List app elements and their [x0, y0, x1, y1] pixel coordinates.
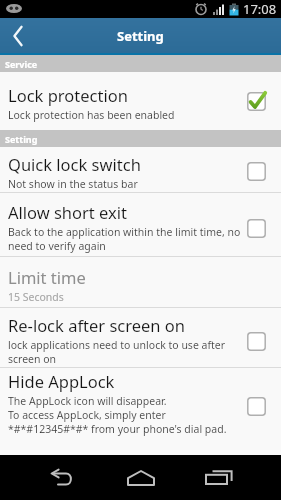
staticText: Limit time [8, 266, 86, 288]
button[interactable]: Hide AppLock [0, 368, 281, 444]
staticText: Allow short exit [8, 201, 128, 223]
button[interactable]: Allow short exit [0, 193, 281, 256]
button[interactable] [190, 455, 248, 500]
staticText: 17:08 [243, 0, 277, 18]
staticText: Back to the application within the limit… [8, 225, 241, 239]
staticText: Hide AppLock [8, 370, 115, 392]
staticText: lock applications need to unlock to use … [8, 338, 226, 352]
staticText: Re-lock after screen on [8, 314, 186, 336]
staticText: need to verify again [8, 239, 106, 253]
staticText: The AppLock icon will disappear. [8, 394, 167, 408]
button[interactable] [112, 455, 170, 500]
button[interactable] [0, 18, 40, 53]
staticText: To access AppLock, simply enter [8, 408, 166, 422]
button[interactable]: Lock protection [0, 72, 281, 130]
button[interactable] [34, 455, 92, 500]
staticText: screen on [8, 352, 57, 366]
staticText: Lock protection has been enabled [8, 108, 175, 122]
staticText: Lock protection [8, 84, 128, 106]
button[interactable]: Re-lock after screen on [0, 308, 281, 367]
staticText: 15 Seconds [8, 290, 64, 304]
staticText: Setting [117, 27, 164, 45]
staticText: Setting [5, 133, 38, 145]
button[interactable]: Limit time [0, 257, 281, 307]
staticText: *#*#12345#*#* from your phone's dial pad… [8, 422, 227, 436]
staticText: Service [5, 58, 38, 70]
button[interactable]: Quick lock switch [0, 147, 281, 192]
staticText: Not show in the status bar [8, 177, 138, 191]
staticText: Quick lock switch [8, 153, 141, 175]
